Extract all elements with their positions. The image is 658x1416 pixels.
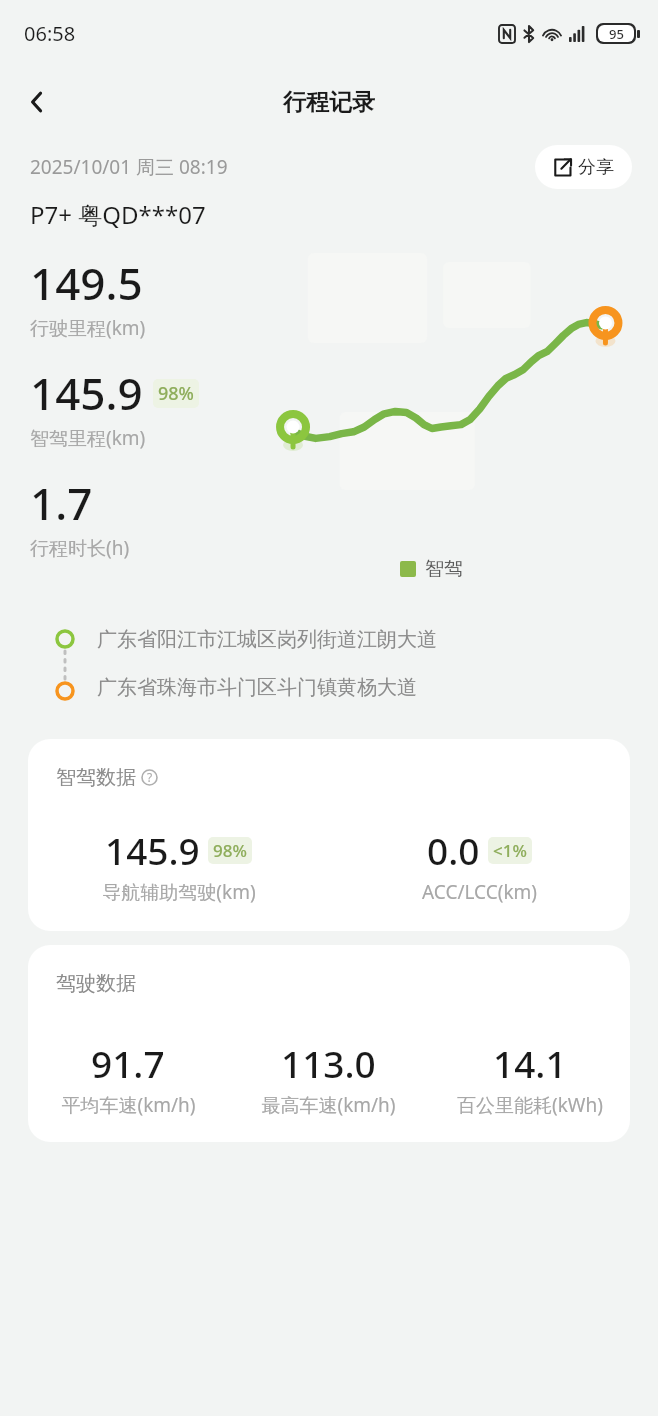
staticText: 145.9 — [105, 825, 200, 875]
staticText: 行程记录 — [283, 88, 375, 117]
staticText: 98% — [213, 839, 247, 862]
staticText: 智驾 — [425, 557, 463, 581]
staticText: 91.7 — [91, 1038, 165, 1088]
staticText: ACC/LCC(km) — [422, 879, 537, 905]
staticText: 智驾数据 — [56, 765, 136, 790]
staticText: 导航辅助驾驶(km) — [102, 879, 256, 905]
button[interactable]: 分享 — [535, 145, 632, 189]
staticText: 行程时长(h) — [30, 535, 130, 561]
staticText: 分享 — [578, 156, 614, 179]
button[interactable]: Back — [10, 75, 64, 129]
button[interactable]: 驾驶数据 — [28, 945, 630, 1142]
staticText: 14.1 — [493, 1038, 567, 1088]
staticText: 98% — [158, 381, 194, 406]
staticText: 百公里能耗(kWh) — [457, 1092, 603, 1118]
button[interactable]: 智驾数据 — [28, 739, 630, 931]
staticText: ? — [147, 769, 153, 785]
staticText: 2025/10/01 周三 08:19 — [30, 154, 228, 180]
staticText: P7+ 粤QD***07 — [30, 198, 206, 231]
staticText: 0.0 — [427, 825, 480, 875]
staticText: 149.5 — [30, 253, 143, 313]
staticText: 驾驶数据 — [56, 971, 136, 996]
staticText: 1.7 — [30, 473, 93, 533]
staticText: 最高车速(km/h) — [261, 1092, 396, 1118]
staticText: 06:58 — [24, 20, 76, 47]
staticText: 平均车速(km/h) — [61, 1092, 196, 1118]
staticText: 广东省珠海市斗门区斗门镇黄杨大道 — [97, 675, 417, 700]
staticText: 145.9 — [30, 363, 143, 423]
staticText: 113.0 — [281, 1038, 376, 1088]
staticText: 智驾里程(km) — [30, 425, 146, 451]
staticText: 广东省阳江市江城区岗列街道江朗大道 — [97, 627, 437, 652]
staticText: 行驶里程(km) — [30, 315, 146, 341]
staticText: 95 — [609, 25, 624, 42]
staticText: <1% — [493, 839, 527, 862]
